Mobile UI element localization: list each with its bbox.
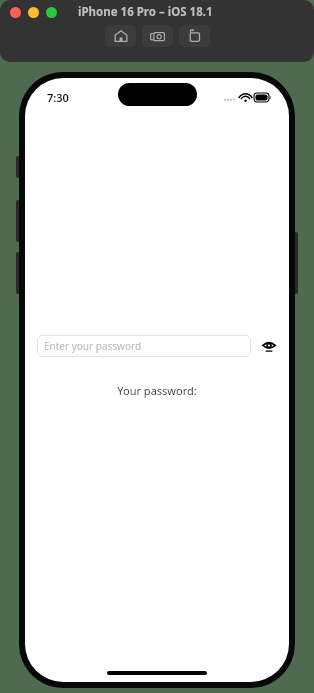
staticText: Enter your password [44,339,142,353]
staticText: Your password: [117,383,197,398]
staticText: iPhone 16 Pro – iOS 18.1 [78,4,213,20]
button[interactable]: Rotate [179,25,210,47]
button[interactable]: Zoom [46,7,57,18]
button[interactable]: Show password [259,336,279,356]
button[interactable]: Close [10,7,21,18]
button[interactable]: Home [105,25,136,47]
button[interactable]: Enter your password [37,335,251,357]
staticText: 7:30 [47,90,69,105]
button[interactable]: Screenshot [142,25,173,47]
button[interactable]: Minimize [28,7,39,18]
